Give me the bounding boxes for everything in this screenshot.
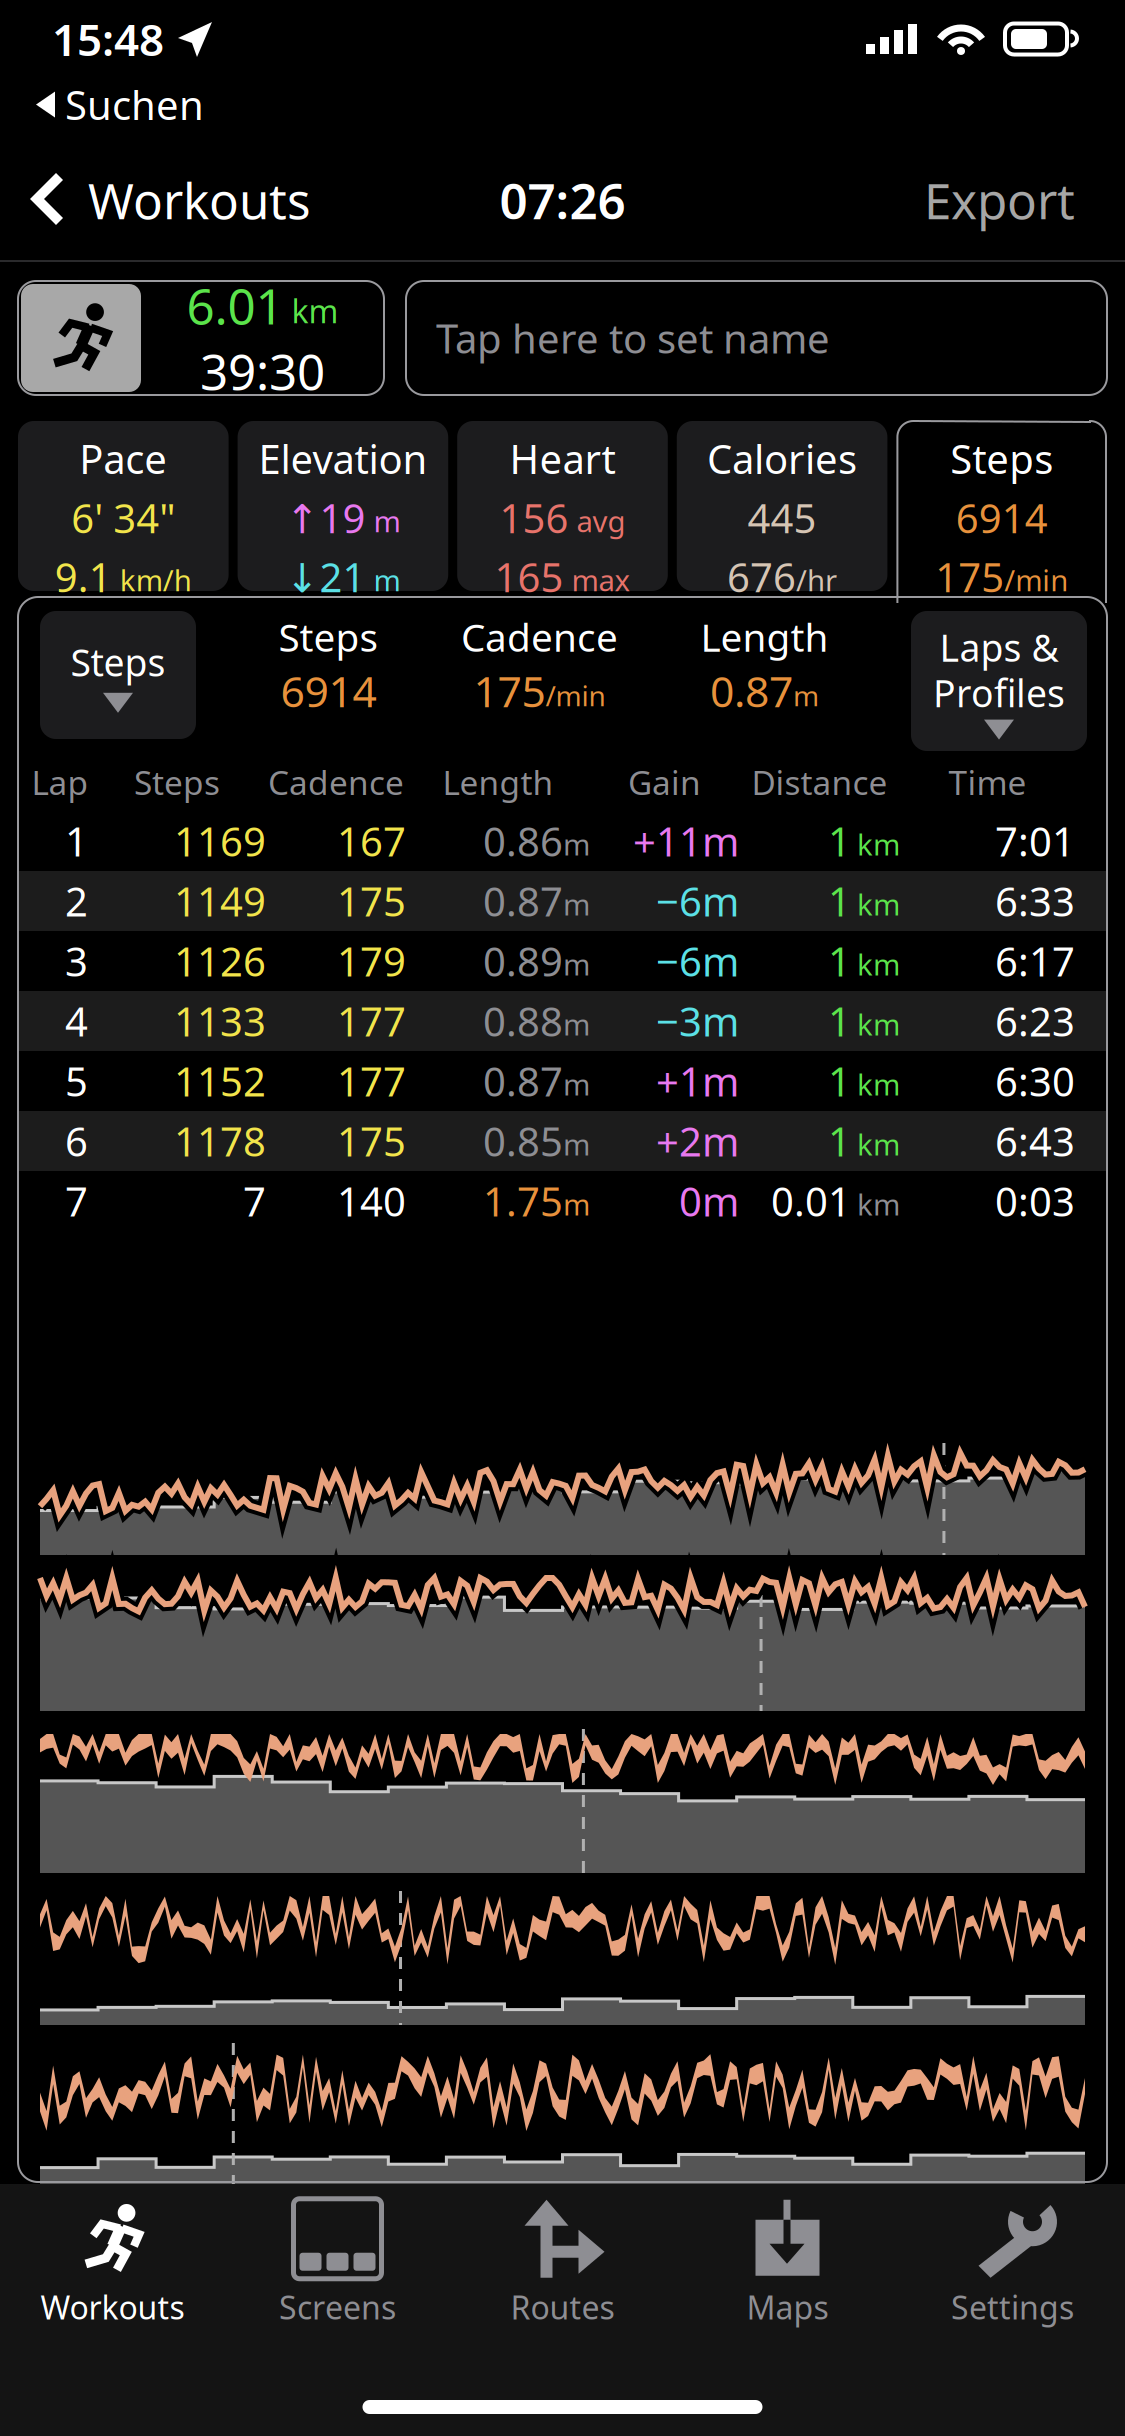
staticText: Steps: [278, 611, 378, 662]
staticText: Screens: [279, 2286, 396, 2328]
staticText: km: [857, 1005, 900, 1044]
staticText: ↓21: [285, 550, 365, 603]
staticText: 6:17: [995, 934, 1075, 987]
staticText: /hr: [796, 560, 837, 599]
staticText: 167: [337, 814, 406, 867]
button[interactable]: Steps: [40, 611, 196, 739]
staticText: 177: [337, 994, 406, 1047]
staticText: km: [857, 1065, 900, 1104]
staticText: km/h: [112, 560, 192, 599]
staticText: m: [563, 1005, 590, 1044]
staticText: /min: [545, 677, 605, 714]
staticText: km: [857, 825, 900, 864]
staticText: 1: [828, 874, 851, 927]
staticText: 1: [828, 1114, 851, 1167]
staticText: 0:03: [995, 1174, 1075, 1227]
button[interactable]: Steps: [896, 421, 1107, 603]
staticText: 1: [828, 994, 851, 1047]
staticText: 6: [65, 1114, 88, 1167]
staticText: Workouts: [40, 2286, 184, 2328]
staticText: 0.01: [771, 1174, 851, 1227]
button[interactable]: Pace: [18, 421, 229, 591]
staticText: Gain: [628, 760, 701, 804]
staticText: 6:43: [995, 1114, 1075, 1167]
staticText: 0.86: [483, 814, 563, 867]
staticText: Elevation: [258, 432, 427, 485]
staticText: 7: [65, 1174, 88, 1227]
staticText: 1126: [174, 934, 266, 987]
staticText: Cadence: [461, 611, 618, 662]
button[interactable]: Screens: [225, 2184, 450, 2344]
staticText: 1.75: [483, 1174, 563, 1227]
staticText: 1133: [174, 994, 266, 1047]
staticText: m: [365, 560, 400, 599]
staticText: Heart: [509, 432, 615, 485]
button[interactable]: Tap here to set name: [406, 281, 1107, 395]
staticText: km: [857, 885, 900, 924]
staticText: 6:23: [995, 994, 1075, 1047]
staticText: 1178: [174, 1114, 266, 1167]
staticText: m: [365, 501, 400, 540]
staticText: Length: [442, 760, 553, 804]
staticText: 1: [828, 1054, 851, 1107]
staticText: −6m: [656, 874, 739, 927]
button[interactable]: 6.01: [18, 281, 384, 395]
button[interactable]: Routes: [450, 2184, 675, 2344]
staticText: Export: [924, 167, 1075, 233]
staticText: +2m: [656, 1114, 739, 1167]
button[interactable]: Workouts: [0, 138, 331, 262]
button[interactable]: Maps: [675, 2184, 900, 2344]
staticText: Length: [700, 611, 828, 662]
button[interactable]: Elevation: [238, 421, 448, 591]
staticText: Steps: [134, 760, 220, 804]
staticText: 177: [337, 1054, 406, 1107]
staticText: m: [563, 885, 590, 924]
button[interactable]: Laps &: [911, 611, 1087, 751]
staticText: 1149: [174, 874, 266, 927]
staticText: m: [563, 1185, 590, 1224]
staticText: −3m: [656, 994, 739, 1047]
staticText: Steps: [70, 637, 165, 687]
staticText: Steps: [950, 432, 1053, 485]
staticText: Profiles: [933, 668, 1065, 718]
button[interactable]: Workouts: [0, 2184, 225, 2344]
staticText: 7:01: [995, 814, 1075, 867]
button[interactable]: Heart: [457, 421, 668, 591]
staticText: 07:26: [499, 167, 625, 233]
staticText: 175: [935, 550, 1004, 603]
staticText: ↑19: [285, 491, 365, 544]
staticText: 3: [65, 934, 88, 987]
button[interactable]: Settings: [900, 2184, 1125, 2344]
staticText: 0m: [679, 1174, 739, 1227]
staticText: −6m: [656, 934, 739, 987]
staticText: Distance: [751, 760, 887, 804]
staticText: 0.89: [483, 934, 563, 987]
staticText: 0.85: [483, 1114, 563, 1167]
staticText: 6:30: [995, 1054, 1075, 1107]
button[interactable]: Export: [884, 138, 1125, 262]
staticText: km: [857, 945, 900, 984]
staticText: 1: [65, 814, 88, 867]
staticText: km: [857, 1125, 900, 1164]
staticText: 0.87: [710, 662, 793, 719]
staticText: 39:30: [200, 338, 325, 403]
staticText: 15:48: [52, 10, 164, 68]
staticText: Lap: [31, 760, 88, 804]
staticText: 0.87: [483, 1054, 563, 1107]
staticText: Workouts: [88, 167, 311, 233]
staticText: Time: [948, 760, 1026, 804]
staticText: +1m: [656, 1054, 739, 1107]
staticText: 6:33: [995, 874, 1075, 927]
staticText: 1: [828, 934, 851, 987]
staticText: m: [563, 945, 590, 984]
staticText: avg: [568, 501, 625, 540]
staticText: 156: [499, 491, 568, 544]
staticText: Tap here to set name: [436, 311, 830, 364]
staticText: 175: [337, 1114, 406, 1167]
staticText: 0.88: [483, 994, 563, 1047]
staticText: Cadence: [268, 760, 404, 804]
button[interactable]: Calories: [677, 421, 887, 591]
staticText: Laps &: [939, 622, 1058, 672]
staticText: 4: [65, 994, 88, 1047]
staticText: 0.87: [483, 874, 563, 927]
